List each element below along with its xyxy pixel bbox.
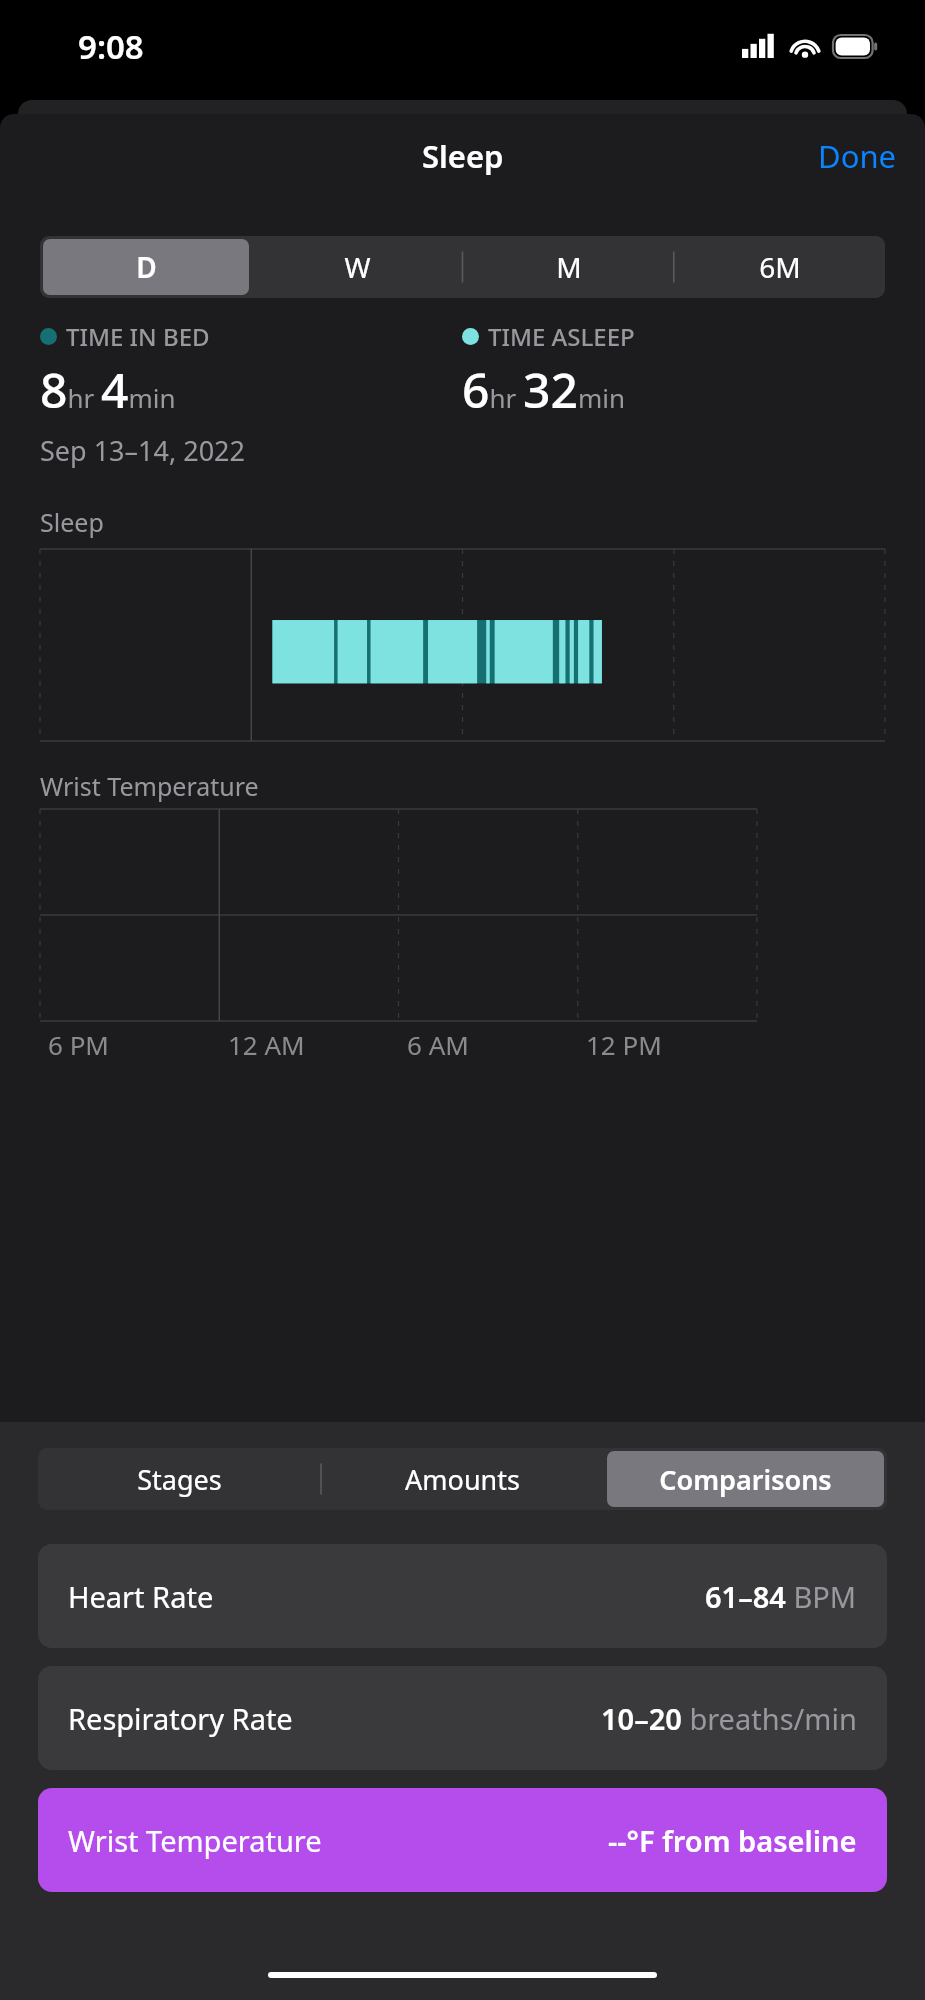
staticText: TIME ASLEEP: [488, 320, 635, 353]
staticText: Done: [818, 135, 897, 177]
button[interactable]: Comparisons: [607, 1451, 884, 1507]
staticText: --°F from baseline: [608, 1821, 857, 1860]
staticText: 6hr 32min: [462, 357, 626, 422]
button[interactable]: W: [255, 239, 460, 295]
staticText: 6M: [759, 248, 801, 286]
button[interactable]: 6M: [677, 239, 882, 295]
staticText: D: [136, 248, 157, 286]
staticText: M: [556, 248, 582, 286]
staticText: 6 AM: [407, 1027, 469, 1062]
staticText: 10–20 breaths/min: [601, 1699, 857, 1738]
staticText: 12 PM: [586, 1027, 662, 1062]
staticText: 6 PM: [48, 1027, 109, 1062]
button[interactable]: D: [43, 239, 249, 295]
button[interactable]: M: [466, 239, 671, 295]
staticText: Sleep: [40, 505, 104, 539]
staticText: Comparisons: [659, 1461, 832, 1498]
staticText: Wrist Temperature: [40, 769, 259, 803]
staticText: Heart Rate: [68, 1577, 214, 1616]
button[interactable]: Respiratory Rate: [38, 1666, 887, 1770]
staticText: Wrist Temperature: [68, 1821, 322, 1860]
staticText: 12 AM: [228, 1027, 305, 1062]
staticText: 9:08: [78, 24, 144, 69]
staticText: 8hr 4min: [40, 357, 176, 422]
button[interactable]: Wrist Temperature: [38, 1788, 887, 1892]
button[interactable]: Amounts: [324, 1451, 601, 1507]
button[interactable]: Heart Rate: [38, 1544, 887, 1648]
staticText: TIME IN BED: [66, 320, 210, 353]
staticText: Amounts: [405, 1461, 520, 1498]
staticText: W: [344, 248, 371, 286]
staticText: 61–84 BPM: [705, 1577, 857, 1616]
staticText: Respiratory Rate: [68, 1699, 293, 1738]
button[interactable]: Done: [790, 125, 925, 187]
staticText: Sleep: [422, 135, 504, 177]
staticText: Stages: [137, 1461, 222, 1498]
button[interactable]: Stages: [41, 1451, 318, 1507]
staticText: Sep 13–14, 2022: [40, 432, 245, 469]
